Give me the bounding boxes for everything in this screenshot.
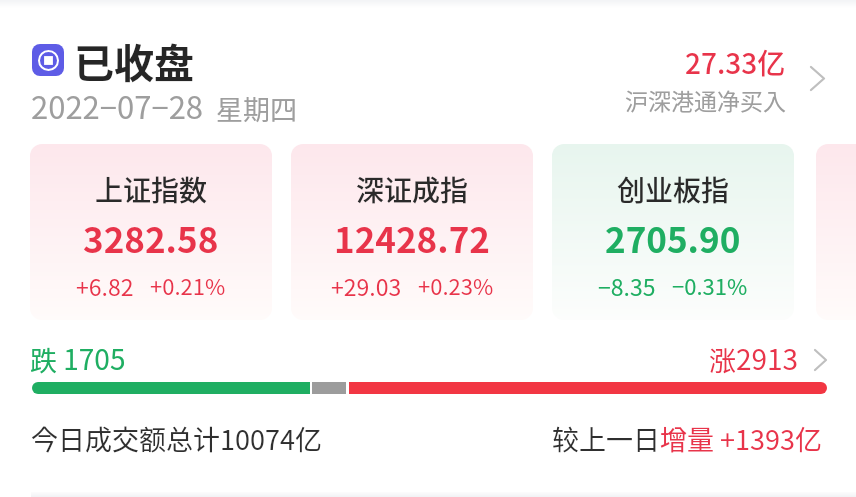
staticText: +29.03 <box>331 269 402 302</box>
staticText: +6.82 <box>76 269 134 302</box>
staticText: 1705 <box>57 338 126 379</box>
staticText: 涨 <box>709 340 736 379</box>
staticText: 创业板指 <box>617 169 730 210</box>
button[interactable]: Advancers 2913 <box>709 338 799 379</box>
button[interactable]: Decliners 1705 <box>30 338 126 379</box>
button[interactable]: Advance decline ratio <box>32 382 827 394</box>
staticText: 已收盘 <box>74 32 194 90</box>
button[interactable]: Advance decline detail <box>805 344 835 376</box>
staticText: −8.35 <box>598 269 656 302</box>
staticText: 星期四 <box>216 89 297 128</box>
staticText: −0.31% <box>672 269 748 301</box>
staticText: 较上一日 <box>552 419 660 458</box>
button[interactable]: 创业板指 <box>552 144 794 320</box>
staticText: 跌 <box>30 340 57 379</box>
staticText: 3282.58 <box>83 212 219 263</box>
staticText: 上证指数 <box>95 169 208 210</box>
button[interactable]: Northbound net buy <box>596 42 786 116</box>
staticText: 今日成交额总计10074亿 <box>31 419 322 458</box>
button[interactable]: Market closed <box>32 44 64 76</box>
staticText: 2705.90 <box>605 212 741 263</box>
button[interactable]: Northbound funds detail <box>800 60 834 96</box>
button[interactable]: 深证成指 <box>291 144 533 320</box>
button[interactable]: 上证指数 <box>30 144 272 320</box>
staticText: +1393亿 <box>714 419 822 458</box>
staticText: 沪深港通净买入 <box>625 83 786 116</box>
staticText: 12428.72 <box>334 212 490 263</box>
staticText: 增量 <box>660 419 714 458</box>
staticText: 2913 <box>736 338 799 379</box>
staticText: 27.33亿 <box>685 42 786 83</box>
staticText: 深证成指 <box>356 169 469 210</box>
staticText: 2022−07−28 <box>31 83 204 128</box>
button[interactable]: 科创50 <box>816 144 856 320</box>
staticText: +0.23% <box>418 269 494 301</box>
staticText: +0.21% <box>150 269 226 301</box>
